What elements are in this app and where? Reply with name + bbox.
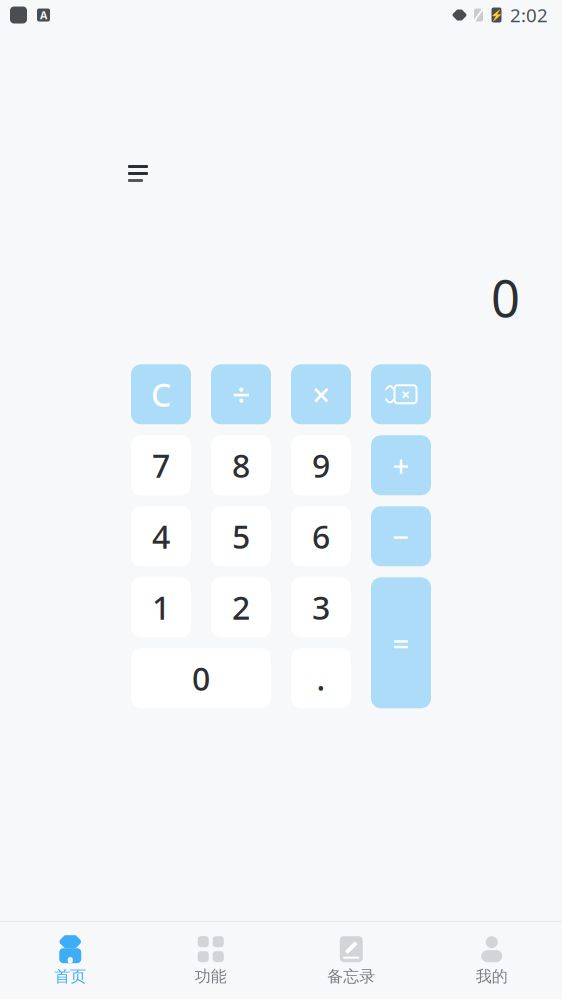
staticText: 5 — [232, 515, 250, 557]
staticText: 功能 — [195, 967, 227, 986]
staticText: 2:02 — [510, 3, 548, 27]
button[interactable]: 0 — [131, 648, 271, 708]
staticText: 7 — [152, 444, 170, 486]
staticText: 3 — [312, 586, 330, 628]
button[interactable]: + — [371, 435, 431, 495]
staticText: ⚡ — [490, 9, 503, 21]
staticText: C — [151, 373, 171, 415]
button[interactable]: ÷ — [211, 364, 271, 424]
staticText: − — [392, 517, 409, 556]
staticText: A — [40, 8, 47, 22]
staticText: 0 — [192, 657, 210, 699]
button[interactable]: 6 — [291, 506, 351, 566]
button[interactable]: 7 — [131, 435, 191, 495]
button[interactable]: 备忘录 — [281, 927, 421, 994]
staticText: + — [392, 446, 409, 485]
staticText: 我的 — [476, 967, 508, 986]
staticText: 1 — [152, 586, 170, 628]
staticText: 8 — [232, 444, 250, 486]
staticText: 0 — [491, 264, 520, 331]
staticText: ÷ — [232, 373, 250, 415]
button[interactable]: 4 — [131, 506, 191, 566]
button[interactable]: = — [371, 577, 431, 708]
button[interactable]: . — [291, 648, 351, 708]
staticText: . — [316, 657, 325, 699]
button[interactable]: 2 — [211, 577, 271, 637]
staticText: 4 — [152, 515, 170, 557]
button[interactable]: 3 — [291, 577, 351, 637]
button[interactable]: Menu — [118, 155, 158, 192]
button[interactable]: Backspace — [371, 364, 431, 424]
button[interactable]: × — [291, 364, 351, 424]
button[interactable]: 1 — [131, 577, 191, 637]
staticText: × — [401, 384, 410, 405]
staticText: 6 — [312, 515, 330, 557]
staticText: 首页 — [54, 967, 86, 986]
staticText: 2 — [232, 586, 250, 628]
button[interactable]: 功能 — [140, 927, 281, 994]
button[interactable]: 8 — [211, 435, 271, 495]
button[interactable]: − — [371, 506, 431, 566]
button[interactable]: 9 — [291, 435, 351, 495]
staticText: × — [312, 373, 330, 415]
staticText: 9 — [312, 444, 330, 486]
button[interactable]: 5 — [211, 506, 271, 566]
button[interactable]: C — [131, 364, 191, 424]
staticText: 备忘录 — [327, 967, 375, 986]
button[interactable]: 首页 — [0, 927, 140, 994]
staticText: = — [392, 623, 409, 662]
button[interactable]: 我的 — [421, 927, 562, 994]
